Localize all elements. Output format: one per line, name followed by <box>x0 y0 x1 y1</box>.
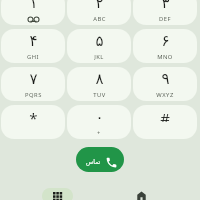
staticText: # <box>160 108 170 122</box>
staticText: ۲ <box>95 0 104 8</box>
button[interactable]: ۱ <box>1 0 65 25</box>
button[interactable]: ۹ <box>133 67 197 101</box>
staticText: ۷ <box>29 70 38 84</box>
staticText: ۹ <box>161 70 170 84</box>
button[interactable]: ۸ <box>67 67 131 101</box>
staticText: ۵ <box>95 32 104 46</box>
staticText: ۸ <box>95 70 104 84</box>
staticText: MNO <box>157 53 173 60</box>
button[interactable]: ۲ <box>67 0 131 25</box>
button[interactable]: ۰ <box>67 105 131 139</box>
button[interactable]: ۳ <box>133 0 197 25</box>
button[interactable]: # <box>133 105 197 139</box>
staticText: ۱ <box>29 0 38 8</box>
staticText: * <box>29 108 38 122</box>
button[interactable]: ۷ <box>1 67 65 101</box>
staticText: ABC <box>93 15 106 22</box>
button[interactable]: تماس <box>76 147 124 172</box>
staticText: + <box>97 129 101 136</box>
button[interactable]: Keypad <box>42 188 73 200</box>
button[interactable]: * <box>1 105 65 139</box>
button[interactable]: Keypad tab <box>53 192 62 200</box>
staticText: ۴ <box>29 32 38 46</box>
staticText: ۶ <box>161 32 170 46</box>
staticText: JKL <box>94 53 104 60</box>
button[interactable]: ۵ <box>67 29 131 63</box>
button[interactable]: ۴ <box>1 29 65 63</box>
staticText: PQRS <box>25 91 42 98</box>
staticText: ۳ <box>161 0 170 8</box>
staticText: ۰ <box>95 108 104 122</box>
staticText: تماس <box>86 158 101 165</box>
staticText: GHI <box>27 53 39 60</box>
staticText: WXYZ <box>156 91 174 98</box>
button[interactable]: Home <box>134 188 154 200</box>
staticText: DEF <box>159 15 171 22</box>
staticText: TUV <box>93 91 106 98</box>
button[interactable]: ۶ <box>133 29 197 63</box>
